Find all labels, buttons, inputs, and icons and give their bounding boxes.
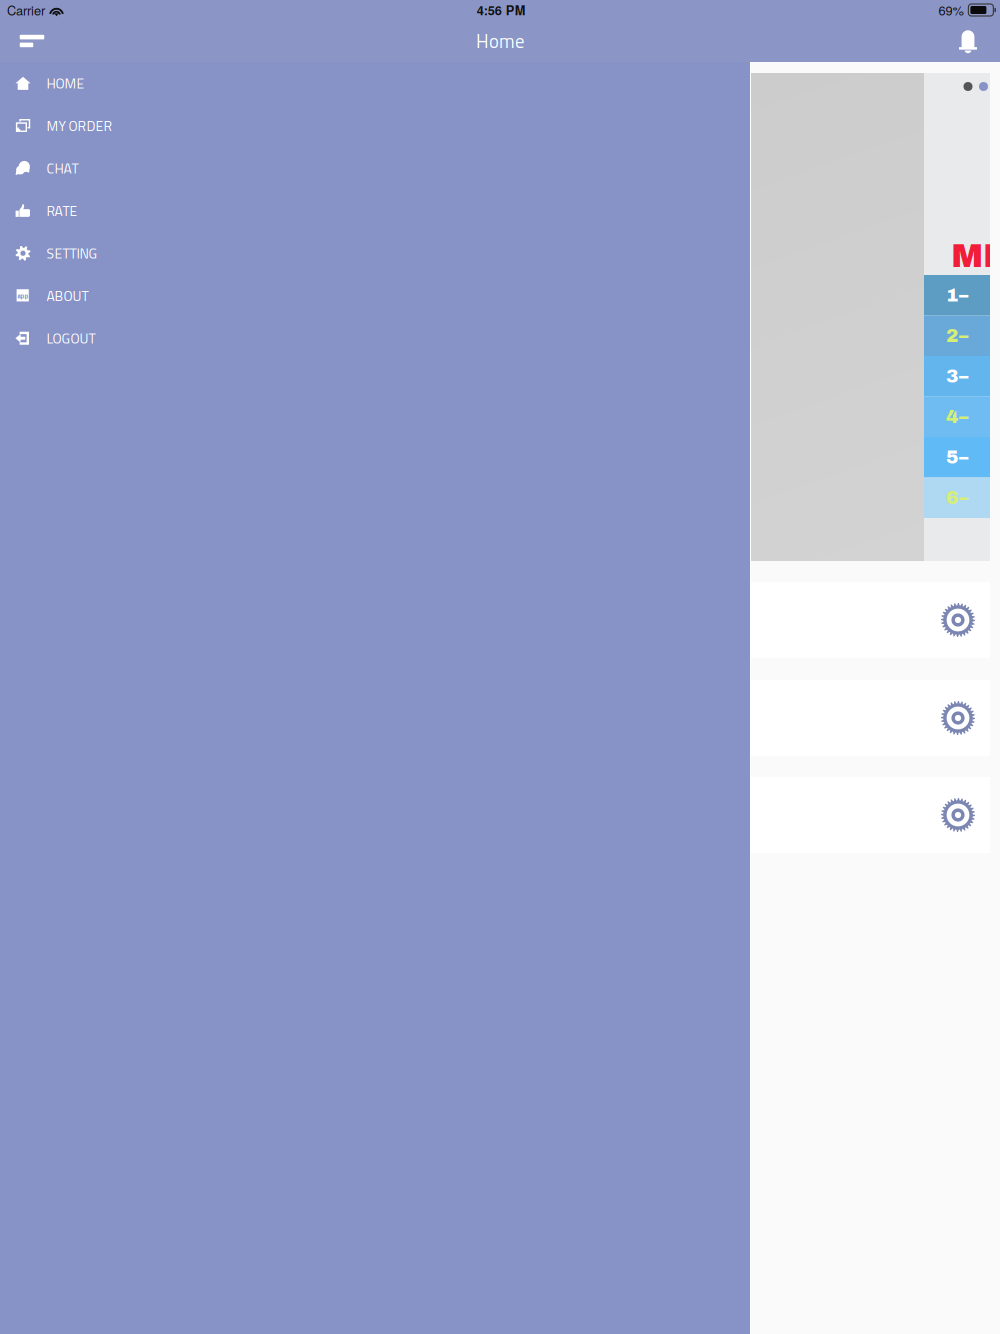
staticText: app [17, 291, 28, 301]
staticText: Home [476, 27, 524, 55]
staticText: ABOUT [46, 285, 88, 306]
button[interactable]: HOME [0, 62, 750, 104]
staticText: SETTING [46, 243, 97, 264]
button[interactable] [751, 777, 990, 853]
staticText: HOME [46, 73, 84, 94]
button[interactable]: LOGOUT [0, 317, 750, 359]
staticText: 4– [946, 407, 968, 427]
button[interactable]: app [0, 274, 750, 317]
staticText: 2– [946, 326, 968, 346]
button[interactable] [751, 680, 990, 756]
button[interactable]: Notifications [946, 20, 990, 62]
staticText: 69% [938, 1, 963, 19]
button[interactable]: RATE [0, 189, 750, 232]
button[interactable]: CHAT [0, 147, 750, 189]
staticText: 4:56 PM [477, 1, 526, 19]
button[interactable]: SETTING [0, 232, 750, 274]
staticText: RATE [46, 200, 77, 221]
button[interactable]: Featured promotion [751, 73, 990, 561]
staticText: LOGOUT [46, 328, 95, 349]
staticText: MY ORDER [46, 115, 112, 136]
staticText: 6– [946, 488, 968, 508]
button[interactable] [751, 582, 990, 658]
staticText: MR [951, 238, 1000, 274]
button[interactable]: Open menu [10, 20, 54, 62]
staticText: 1– [946, 285, 968, 305]
staticText: CHAT [46, 158, 78, 179]
staticText: Carrier [7, 1, 45, 19]
button[interactable]: MY ORDER [0, 104, 750, 147]
staticText: 3– [946, 366, 968, 386]
staticText: 5– [946, 447, 968, 467]
